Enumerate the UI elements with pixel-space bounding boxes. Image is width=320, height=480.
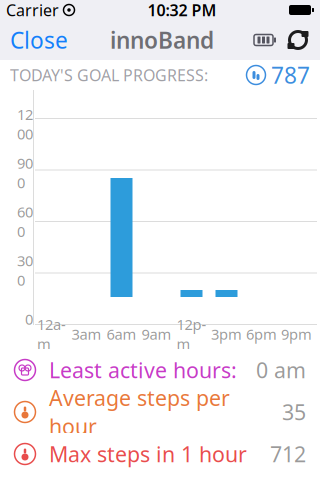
staticText: Carrier — [6, 0, 59, 21]
staticText: 6am — [106, 324, 136, 344]
staticText: 9pm — [281, 324, 312, 344]
staticText: Average steps per hour — [49, 384, 230, 440]
staticText: 0 am — [256, 356, 306, 384]
staticText: 712 — [270, 440, 306, 468]
staticText: Least active hours: — [49, 356, 237, 384]
staticText: 12pm — [176, 314, 206, 353]
staticText: 900 — [17, 153, 33, 192]
staticText: Close — [10, 25, 68, 55]
staticText: 12am — [37, 314, 66, 353]
staticText: 300 — [17, 251, 33, 290]
staticText: 6pm — [246, 324, 277, 344]
button[interactable]: Average steps per hour — [0, 391, 320, 433]
staticText: 1200 — [17, 104, 33, 143]
button[interactable]: Sync — [284, 20, 320, 60]
staticText: 0 — [25, 309, 33, 329]
staticText: TODAY'S GOAL PROGRESS: — [10, 64, 208, 86]
staticText: 787 — [271, 60, 310, 90]
staticText: 3am — [71, 324, 101, 344]
button[interactable]: Max steps in 1 hour — [0, 433, 320, 475]
staticText: 35 — [282, 398, 306, 426]
staticText: Max steps in 1 hour — [49, 440, 247, 468]
staticText: 3pm — [211, 324, 242, 344]
staticText: 10:32 PM — [147, 0, 216, 21]
button[interactable]: Device battery — [246, 20, 284, 60]
staticText: 9am — [141, 324, 171, 344]
staticText: innoBand — [110, 25, 214, 55]
button[interactable]: Least active hours: — [0, 349, 320, 391]
staticText: 600 — [17, 202, 33, 241]
button[interactable]: Close — [0, 20, 78, 60]
